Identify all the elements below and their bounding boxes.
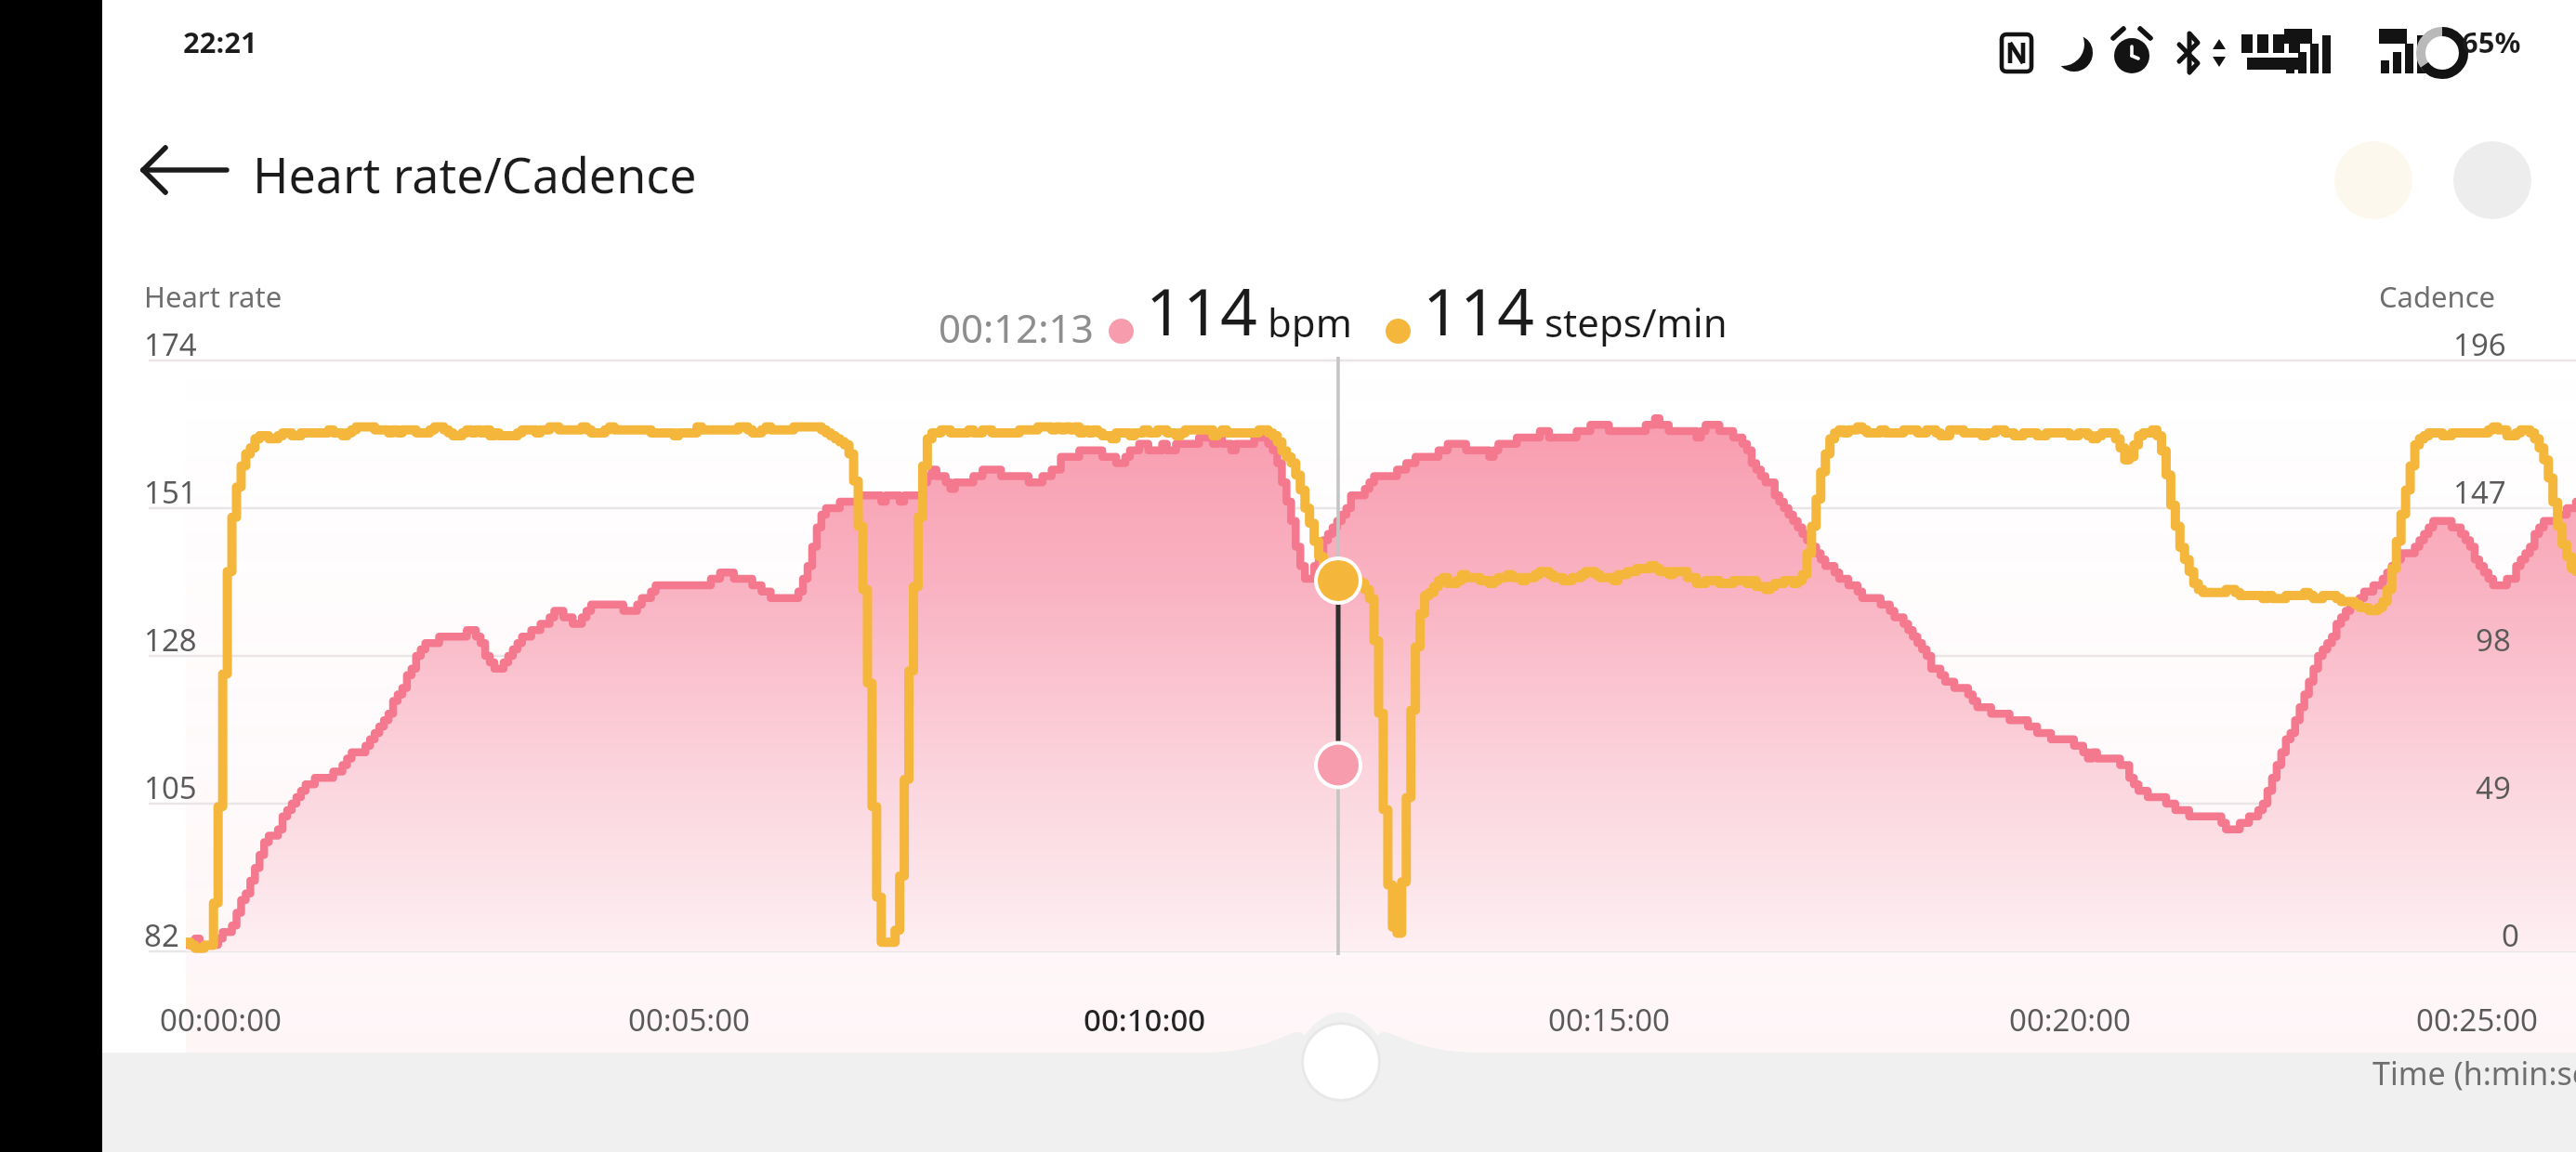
staticText: Time (h:min:sec) — [2372, 1052, 2576, 1094]
staticText: 128 — [144, 619, 197, 661]
staticText: 114 — [1423, 266, 1535, 354]
staticText: 49 — [2476, 766, 2511, 808]
staticText: 00:00:00 — [160, 999, 282, 1041]
staticText: 147 — [2453, 471, 2506, 513]
staticText: 82 — [144, 914, 179, 956]
staticText: 174 — [144, 323, 197, 365]
staticText: 151 — [144, 471, 197, 513]
staticText: 98 — [2476, 619, 2511, 661]
button[interactable]: Cadence chart — [2334, 141, 2412, 219]
staticText: 65% — [2462, 22, 2521, 61]
staticText: Heart rate — [144, 277, 283, 316]
staticText: 196 — [2453, 323, 2506, 365]
staticText: 0 — [2502, 914, 2519, 956]
staticText: 00:25:00 — [2416, 999, 2538, 1041]
staticText: 00:12:13 — [939, 301, 1094, 354]
staticText: steps/min — [1544, 295, 1728, 348]
staticText: 22:21 — [183, 22, 257, 61]
staticText: Heart rate/Cadence — [253, 141, 697, 207]
staticText: bpm — [1268, 295, 1352, 348]
staticText: 00:20:00 — [2009, 999, 2131, 1041]
staticText: 00:05:00 — [628, 999, 750, 1041]
staticText: 105 — [144, 766, 197, 808]
staticText: 114 — [1146, 266, 1258, 354]
button[interactable]: Speed chart — [2453, 141, 2531, 219]
staticText: 00:15:00 — [1548, 999, 1670, 1041]
staticText: 00:10:00 — [1084, 999, 1206, 1041]
button[interactable]: Back — [153, 127, 265, 239]
staticText: Cadence — [2379, 277, 2496, 316]
